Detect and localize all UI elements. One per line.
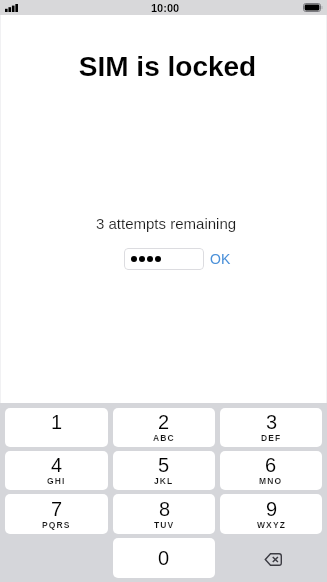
button[interactable]: 7 <box>5 494 108 534</box>
staticText: SIM is locked <box>7 51 327 82</box>
staticText: DEF <box>261 433 282 442</box>
staticText: 3 attempts remaining <box>96 215 237 232</box>
staticText: 1 <box>51 411 63 433</box>
button[interactable]: Backspace <box>220 538 322 578</box>
staticText: 0 <box>158 547 170 569</box>
staticText: PQRS <box>42 520 71 529</box>
button[interactable]: 1 <box>5 408 108 447</box>
button[interactable]: 0 <box>113 538 215 578</box>
staticText: GHI <box>47 476 66 485</box>
button[interactable]: 9 <box>220 494 322 534</box>
staticText: 7 <box>51 498 63 520</box>
staticText: 10:00 <box>151 2 180 14</box>
button[interactable] <box>124 248 204 270</box>
staticText: 5 <box>158 454 170 476</box>
button[interactable]: 5 <box>113 451 215 490</box>
button[interactable]: OK <box>210 251 231 267</box>
staticText: 9 <box>266 498 278 520</box>
button[interactable]: 3 <box>220 408 322 447</box>
staticText: 8 <box>159 498 171 520</box>
staticText: JKL <box>154 476 174 485</box>
staticText: WXYZ <box>257 520 286 529</box>
button[interactable]: 6 <box>220 451 322 490</box>
staticText: 4 <box>51 454 63 476</box>
button[interactable]: 8 <box>113 494 215 534</box>
button[interactable]: 2 <box>113 408 215 447</box>
staticText: OK <box>210 251 231 267</box>
staticText: 2 <box>158 411 170 433</box>
button[interactable]: 4 <box>5 451 108 490</box>
staticText: TUV <box>154 520 175 529</box>
staticText: MNO <box>259 476 283 485</box>
staticText: ABC <box>153 433 175 442</box>
staticText: 3 <box>266 411 278 433</box>
staticText: 6 <box>265 454 277 476</box>
